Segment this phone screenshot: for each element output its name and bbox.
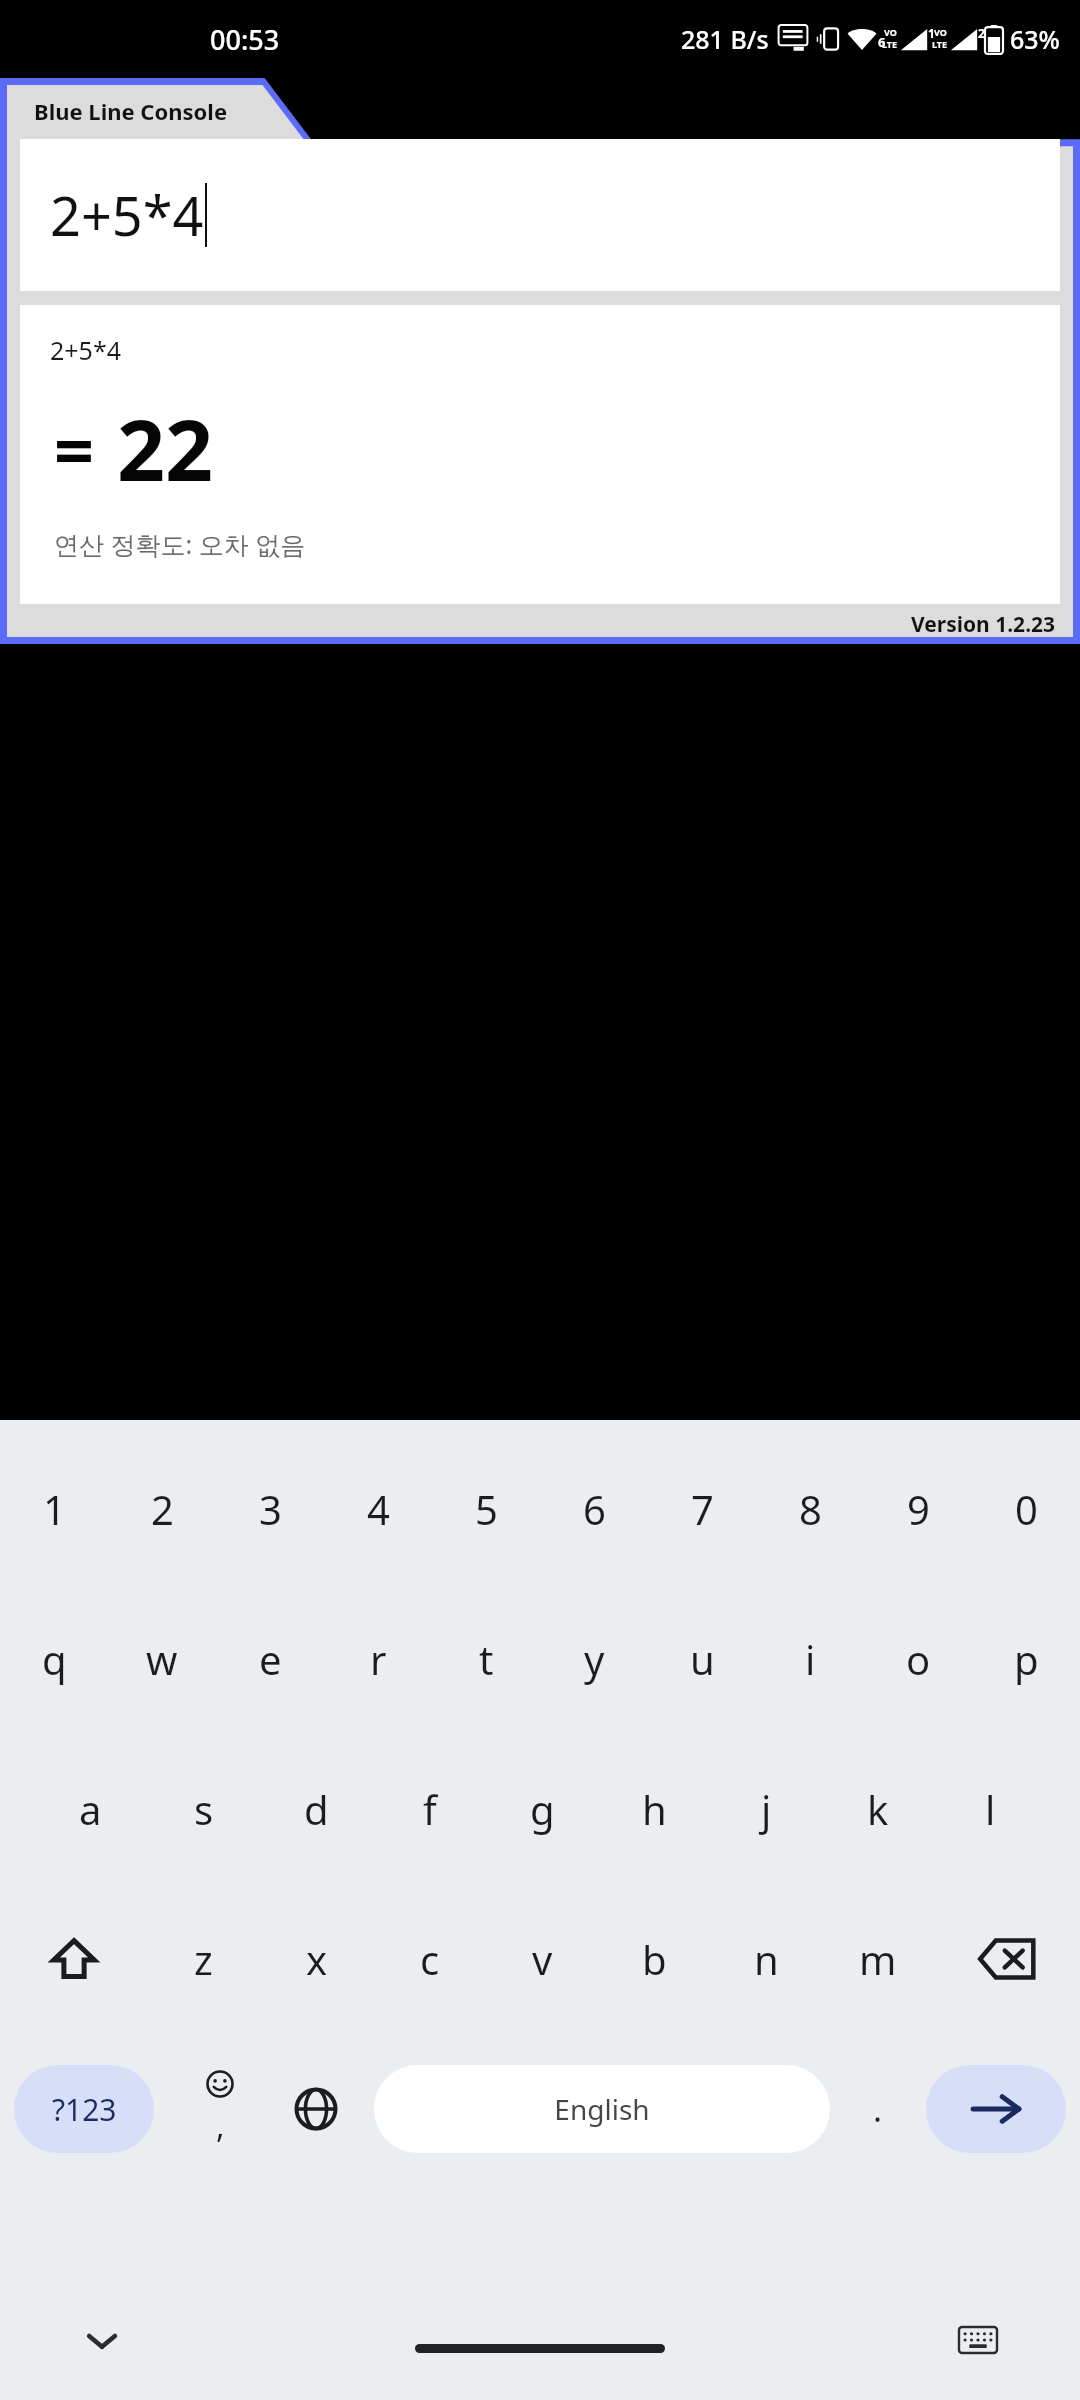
staticText: 2+5*4 — [50, 333, 121, 367]
staticText: VO — [884, 26, 897, 38]
button[interactable]: c — [373, 1884, 486, 2034]
button[interactable]: i — [756, 1584, 864, 1734]
staticText: VO — [934, 26, 947, 38]
staticText: 63% — [1010, 22, 1060, 56]
staticText: z — [194, 1932, 213, 1986]
staticText: t — [479, 1632, 494, 1686]
staticText: n — [754, 1932, 779, 1986]
button[interactable]: 2+5*4 — [20, 139, 1060, 291]
button[interactable]: 7 — [648, 1434, 756, 1584]
button[interactable]: Backspace — [934, 1884, 1080, 2034]
button[interactable]: h — [598, 1734, 710, 1884]
staticText: 1 — [928, 25, 935, 41]
staticText: p — [1014, 1632, 1039, 1686]
staticText: i — [805, 1632, 816, 1686]
staticText: LTE — [882, 38, 898, 50]
button[interactable]: l — [934, 1734, 1046, 1884]
button[interactable]: a — [34, 1734, 147, 1884]
staticText: English — [554, 2090, 650, 2128]
staticText: c — [420, 1932, 440, 1986]
button[interactable]: s — [147, 1734, 260, 1884]
button[interactable]: 2 — [108, 1434, 216, 1584]
staticText: o — [906, 1632, 931, 1686]
button[interactable]: Change keyboard language — [268, 2034, 364, 2184]
button[interactable]: . — [830, 2034, 926, 2184]
staticText: = — [54, 401, 95, 496]
button[interactable]: 1 — [0, 1434, 108, 1584]
button[interactable]: b — [598, 1884, 710, 2034]
staticText: 4 — [367, 1482, 390, 1536]
staticText: 1 — [43, 1482, 66, 1536]
staticText: y — [584, 1632, 605, 1686]
button[interactable]: Emoji and comma — [172, 2034, 268, 2184]
button[interactable]: 5 — [432, 1434, 540, 1584]
button[interactable]: ?123 — [14, 2065, 154, 2153]
button[interactable]: m — [822, 1884, 934, 2034]
button[interactable] — [415, 2344, 665, 2353]
staticText: Version 1.2.23 — [911, 610, 1056, 639]
staticText: q — [42, 1632, 67, 1686]
button[interactable]: u — [648, 1584, 756, 1734]
button[interactable]: w — [108, 1584, 216, 1734]
button[interactable]: 6 — [540, 1434, 648, 1584]
staticText: m — [859, 1932, 897, 1986]
button[interactable]: z — [147, 1884, 260, 2034]
staticText: k — [867, 1782, 889, 1836]
button[interactable]: g — [486, 1734, 598, 1884]
staticText: h — [642, 1782, 667, 1836]
staticText: 연산 정확도: 오차 없음 — [54, 527, 306, 561]
staticText: 22 — [117, 391, 214, 505]
button[interactable]: f — [373, 1734, 486, 1884]
staticText: 8 — [799, 1482, 822, 1536]
button[interactable]: 0 — [972, 1434, 1080, 1584]
staticText: 7 — [691, 1482, 714, 1536]
button[interactable]: 4 — [324, 1434, 432, 1584]
staticText: j — [761, 1782, 772, 1836]
staticText: e — [259, 1632, 282, 1686]
button[interactable]: English — [374, 2065, 830, 2153]
button[interactable]: v — [486, 1884, 598, 2034]
button[interactable]: n — [710, 1884, 822, 2034]
button[interactable]: Enter — [926, 2065, 1066, 2153]
button[interactable]: k — [822, 1734, 934, 1884]
staticText: v — [532, 1932, 553, 1986]
staticText: 9 — [907, 1482, 930, 1536]
button[interactable]: q — [0, 1584, 108, 1734]
button[interactable]: 8 — [756, 1434, 864, 1584]
button[interactable]: j — [710, 1734, 822, 1884]
staticText: 6 — [878, 33, 886, 51]
button[interactable]: 9 — [864, 1434, 972, 1584]
staticText: s — [194, 1782, 214, 1836]
staticText: 281 B/s — [681, 22, 769, 56]
button[interactable]: Hide keyboard — [70, 2308, 134, 2372]
button[interactable]: d — [260, 1734, 373, 1884]
button[interactable]: 3 — [216, 1434, 324, 1584]
button[interactable]: y — [540, 1584, 648, 1734]
staticText: , — [216, 2104, 225, 2148]
staticText: 5 — [475, 1482, 498, 1536]
staticText: 3 — [259, 1482, 282, 1536]
button[interactable]: o — [864, 1584, 972, 1734]
staticText: x — [306, 1932, 328, 1986]
staticText: d — [304, 1782, 329, 1836]
staticText: 2+5*4 — [50, 178, 204, 252]
staticText: b — [642, 1932, 667, 1986]
staticText: 2 — [151, 1482, 174, 1536]
staticText: 2 — [978, 25, 985, 41]
staticText: r — [370, 1632, 387, 1686]
staticText: ?123 — [52, 2089, 117, 2130]
button[interactable]: x — [260, 1884, 373, 2034]
button[interactable]: p — [972, 1584, 1080, 1734]
staticText: Blue Line Console — [34, 96, 228, 126]
staticText: f — [423, 1782, 437, 1836]
button[interactable]: t — [432, 1584, 540, 1734]
staticText: u — [690, 1632, 715, 1686]
staticText: l — [985, 1782, 996, 1836]
button[interactable]: 2+5*4 — [20, 305, 1060, 604]
button[interactable]: Switch keyboard — [946, 2308, 1010, 2372]
staticText: LTE — [932, 38, 948, 50]
staticText: 0 — [1015, 1482, 1038, 1536]
button[interactable]: Shift — [0, 1884, 147, 2034]
button[interactable]: e — [216, 1584, 324, 1734]
button[interactable]: r — [324, 1584, 432, 1734]
